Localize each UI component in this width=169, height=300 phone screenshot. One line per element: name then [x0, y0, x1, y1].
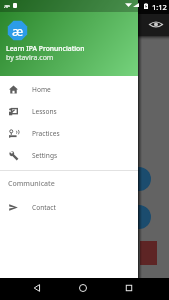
- staticText: æ: [4, 2, 10, 8]
- button[interactable]: Contact: [0, 196, 138, 218]
- button[interactable]: Home: [73, 278, 93, 298]
- staticText: Settings: [32, 151, 58, 160]
- staticText: Practices: [32, 129, 60, 138]
- staticText: Lessons: [32, 107, 57, 116]
- button[interactable]: Recent apps: [119, 278, 139, 298]
- staticText: Communicate: [8, 179, 55, 189]
- staticText: æ: [12, 22, 24, 40]
- staticText: Home: [32, 85, 51, 94]
- staticText: by stavira.com: [6, 53, 54, 63]
- button[interactable]: Home: [0, 78, 138, 100]
- button[interactable]: Back: [27, 278, 47, 298]
- button[interactable]: Settings: [0, 144, 138, 166]
- staticText: 1:12: [152, 2, 167, 12]
- button[interactable]: Preview: [147, 15, 165, 33]
- staticText: Contact: [32, 203, 56, 212]
- button[interactable]: Lessons: [0, 100, 138, 122]
- button[interactable]: Practices: [0, 122, 138, 144]
- staticText: Learn IPA Pronunciation: [6, 44, 85, 53]
